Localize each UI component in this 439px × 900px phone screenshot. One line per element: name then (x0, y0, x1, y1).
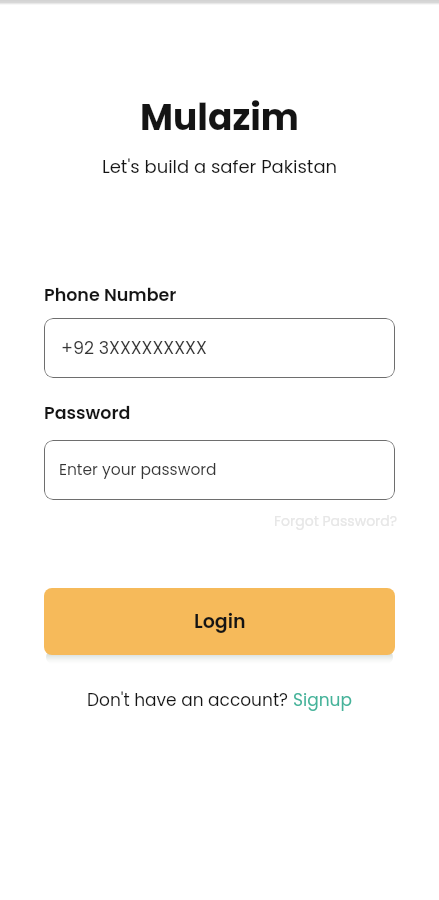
button[interactable]: Password input (44, 440, 395, 500)
staticText: Let's build a safer Pakistan (0, 154, 439, 179)
staticText: Forgot Password? (274, 511, 398, 531)
staticText: Mulazim (0, 92, 439, 142)
staticText: +92 3XXXXXXXXX (61, 336, 207, 361)
button[interactable]: Signup (293, 688, 352, 712)
staticText: Password (44, 401, 131, 421)
staticText: Login (194, 608, 246, 635)
button[interactable]: Phone number input (44, 318, 395, 378)
staticText: Enter your password (59, 459, 217, 481)
button[interactable]: Forgot Password? (274, 511, 398, 531)
button[interactable]: Login (44, 588, 395, 655)
staticText: Phone Number (44, 283, 177, 303)
staticText: Don't have an account? (87, 688, 293, 712)
staticText: Signup (293, 688, 352, 712)
